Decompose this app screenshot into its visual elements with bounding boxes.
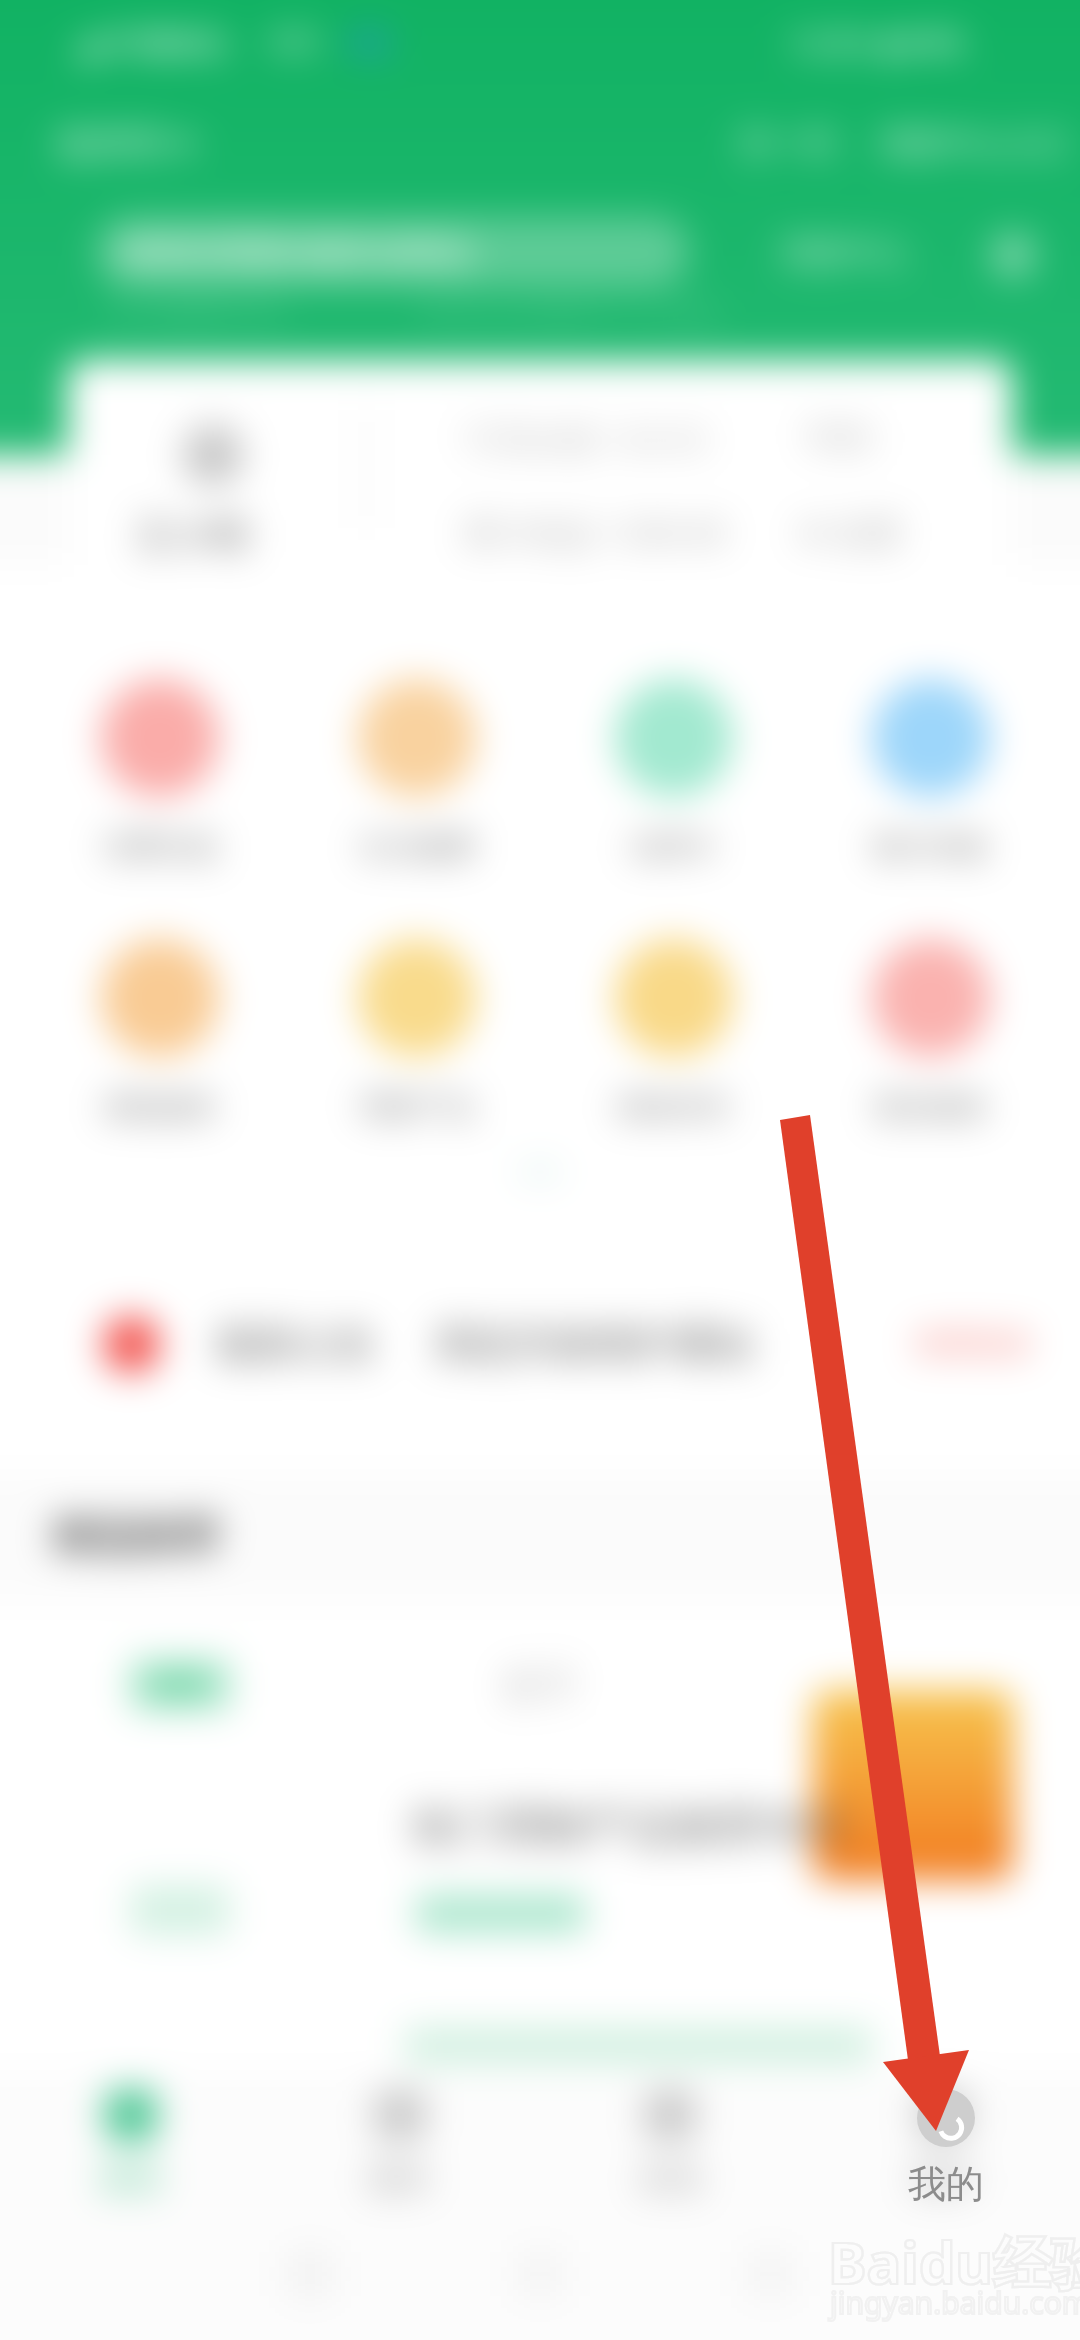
staticText: 实名认证服务中心信息 (420, 292, 720, 330)
button[interactable]: 搜索您需要的服务或商品 (95, 216, 690, 288)
staticText: 热门理财产品推荐专区 (411, 1800, 851, 1855)
staticText: 我的 (911, 2159, 975, 2199)
staticText: 查看更多 (914, 1325, 1034, 1363)
button[interactable]: 服务 (332, 2070, 468, 2230)
staticText: 最新公告 (216, 1319, 376, 1369)
button[interactable] (813, 1690, 1013, 1880)
staticText: 更多服务 (873, 1089, 989, 1126)
staticText: Baidu经验 (828, 2222, 1080, 2301)
staticText: 首页 (99, 2159, 163, 2199)
button[interactable]: 更多服务 (802, 939, 1059, 1126)
staticText: 我的 (908, 2160, 984, 2208)
staticText: 王小明 (135, 512, 249, 560)
button[interactable]: 理财产品 (288, 939, 545, 1126)
staticText: 推荐 (154, 1669, 206, 1702)
staticText: 12:30 ▮ 84% (788, 22, 964, 63)
staticText: 服务 (368, 2159, 432, 2199)
staticText: 搜索您需要的服务或商品 (121, 232, 473, 272)
button[interactable]: 王小明 (68, 360, 1012, 590)
staticText: 信用卡 (630, 829, 717, 866)
staticText: 扫一扫 消息中心入口 (740, 120, 1070, 164)
staticText: 杭州市 ▾ (58, 118, 194, 167)
staticText: jingyan.baidu.com (830, 2282, 1080, 2323)
staticText: 话费充值 (102, 829, 218, 866)
button[interactable]: 我的 (875, 2070, 1011, 2230)
button[interactable]: 话费充值 (31, 679, 288, 866)
button[interactable]: 生活缴费 (288, 679, 545, 866)
staticText: 银行转账 (873, 829, 989, 866)
button[interactable]: 保险服务 (31, 939, 288, 1126)
staticText: ◴◴ (268, 22, 321, 57)
button[interactable]: 发现 (602, 2070, 738, 2230)
button[interactable]: 推荐 (130, 1660, 230, 1710)
staticText: 生活缴费 (359, 829, 475, 866)
staticText: ◢ 中国移动 (76, 22, 227, 63)
staticText: 借钱专区 (616, 1089, 732, 1126)
staticText: 理财产品 (359, 1089, 475, 1126)
button[interactable]: 最新公告 (0, 1213, 1080, 1475)
staticText: 4G (348, 20, 390, 64)
button[interactable]: 更多 (990, 232, 1036, 278)
button[interactable]: 首页 (63, 2070, 199, 2230)
button[interactable]: 消息中心 (780, 232, 908, 272)
button[interactable]: 信用卡 (545, 679, 802, 866)
button[interactable]: 我的 (877, 2078, 1013, 2218)
staticText: 生活缴费专区 (108, 292, 288, 330)
staticText: 精选推荐 (52, 1511, 220, 1564)
staticText: 系统升级维护通知 (433, 1319, 753, 1369)
staticText: 保险服务 (102, 1089, 218, 1126)
button[interactable] (130, 1885, 230, 1935)
button[interactable]: 银行转账 (802, 679, 1059, 866)
button[interactable]: 借钱专区 (545, 939, 802, 1126)
